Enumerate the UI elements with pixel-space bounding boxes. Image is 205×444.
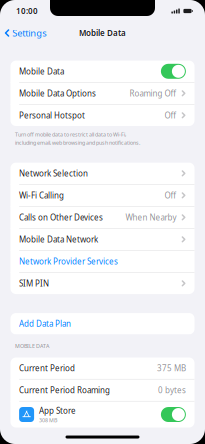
staticText: App Store [39,405,76,416]
button[interactable]: App Store [10,401,194,427]
staticText: Network Provider Services [19,256,118,267]
staticText: Mobile Data Network [19,234,98,245]
staticText: including email, web browsing and push n… [15,139,140,146]
button[interactable]: Current Period [10,357,194,379]
staticText: Turn off mobile data to restrict all dat… [15,131,126,138]
staticText: 308 MB [39,416,57,424]
staticText: Off [164,110,176,121]
staticText: 0 bytes [158,385,186,395]
button[interactable]: Mobile Data Options [10,83,194,104]
button[interactable]: Network Provider Services [10,251,194,272]
button[interactable]: Current Period Roaming [10,379,194,401]
staticText: Wi-Fi Calling [19,190,64,201]
staticText: Mobile Data [19,66,64,77]
staticText: 375 MB [157,363,186,373]
staticText: 10:00 [16,6,38,16]
button[interactable]: Wi-Fi Calling [10,185,194,206]
staticText: MOBILE DATA [15,342,49,349]
staticText: Calls on Other Devices [19,212,103,223]
staticText: When Nearby [125,212,176,223]
staticText: Current Period Roaming [19,385,110,395]
staticText: Settings [12,27,46,39]
button[interactable]: SIM PIN [10,273,194,294]
button[interactable]: Add Data Plan [10,313,194,334]
staticText: Mobile Data Options [19,88,96,99]
staticText: Off [164,190,176,201]
button[interactable]: Mobile Data Network [10,229,194,250]
staticText: SIM PIN [19,278,49,289]
staticText: Mobile Data [79,28,126,38]
staticText: Current Period [19,363,75,373]
button[interactable]: Personal Hotspot [10,105,194,126]
staticText: Roaming Off [129,88,176,99]
staticText: Network Selection [19,168,88,179]
staticText: Personal Hotspot [19,110,85,121]
button[interactable]: Calls on Other Devices [10,207,194,228]
button[interactable]: Mobile Data [10,61,194,82]
staticText: Add Data Plan [19,318,71,329]
button[interactable]: Settings [0,22,46,44]
button[interactable]: Network Selection [10,163,194,184]
